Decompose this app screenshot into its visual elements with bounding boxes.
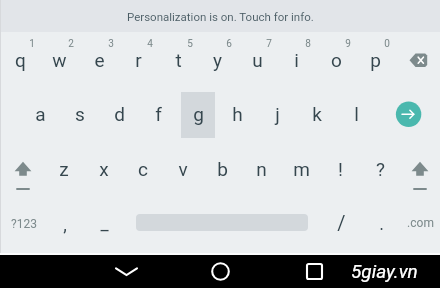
button[interactable]: e bbox=[80, 33, 119, 87]
button[interactable]: v bbox=[163, 142, 202, 196]
staticText: 4 bbox=[147, 38, 153, 50]
staticText: p bbox=[370, 49, 381, 71]
button[interactable]: ?123 bbox=[1, 200, 47, 248]
button[interactable]: f bbox=[139, 87, 178, 141]
button[interactable]: a bbox=[21, 87, 60, 141]
staticText: q bbox=[15, 49, 26, 71]
staticText: r bbox=[135, 49, 142, 71]
button[interactable]: Recent apps bbox=[294, 255, 335, 288]
button[interactable]: ? bbox=[361, 142, 400, 196]
staticText: c bbox=[138, 158, 148, 180]
button[interactable]: s bbox=[60, 87, 99, 141]
button[interactable]: y bbox=[198, 33, 237, 87]
staticText: _ bbox=[100, 213, 109, 234]
staticText: n bbox=[256, 158, 267, 180]
staticText: g bbox=[193, 103, 204, 125]
button[interactable]: g bbox=[179, 87, 218, 141]
staticText: a bbox=[35, 103, 46, 125]
staticText: 3 bbox=[108, 38, 114, 50]
staticText: 5giay.vn bbox=[351, 260, 418, 282]
staticText: x bbox=[99, 158, 109, 180]
staticText: 8 bbox=[305, 38, 311, 50]
button[interactable]: q bbox=[1, 33, 40, 87]
staticText: z bbox=[59, 158, 69, 180]
button[interactable]: m bbox=[282, 142, 321, 196]
staticText: k bbox=[312, 103, 322, 125]
button[interactable]: _ bbox=[85, 199, 124, 247]
button[interactable]: w bbox=[40, 33, 79, 87]
staticText: i bbox=[294, 49, 299, 71]
staticText: Personalization is on. Touch for info. bbox=[127, 10, 314, 23]
staticText: 2 bbox=[68, 38, 74, 50]
staticText: . bbox=[379, 213, 384, 234]
staticText: e bbox=[94, 49, 105, 71]
button[interactable]: Home bbox=[200, 255, 241, 288]
button[interactable]: u bbox=[238, 33, 277, 87]
button[interactable]: Shift bbox=[398, 141, 440, 195]
staticText: t bbox=[175, 49, 182, 71]
staticText: 9 bbox=[345, 38, 351, 50]
staticText: 0 bbox=[384, 38, 390, 50]
staticText: ?123 bbox=[11, 217, 37, 231]
button[interactable]: c bbox=[123, 142, 162, 196]
staticText: y bbox=[213, 49, 222, 71]
staticText: h bbox=[232, 103, 243, 125]
staticText: u bbox=[252, 49, 263, 71]
button[interactable]: Enter bbox=[385, 91, 432, 137]
staticText: 5 bbox=[187, 38, 193, 50]
button[interactable]: r bbox=[119, 33, 158, 87]
button[interactable]: z bbox=[44, 142, 83, 196]
button[interactable]: Shift bbox=[1, 141, 45, 195]
button[interactable]: ! bbox=[321, 142, 360, 196]
button[interactable]: , bbox=[45, 200, 84, 248]
staticText: 7 bbox=[266, 38, 272, 50]
staticText: d bbox=[114, 103, 125, 125]
staticText: ? bbox=[376, 158, 385, 180]
staticText: f bbox=[155, 103, 162, 125]
staticText: l bbox=[354, 103, 359, 125]
button[interactable]: o bbox=[317, 33, 356, 87]
button[interactable]: / bbox=[322, 198, 361, 246]
button[interactable]: Hide keyboard bbox=[106, 255, 147, 288]
button[interactable]: .com bbox=[398, 199, 440, 247]
staticText: j bbox=[275, 103, 280, 125]
staticText: w bbox=[52, 49, 67, 71]
button[interactable]: x bbox=[84, 142, 123, 196]
button[interactable]: d bbox=[100, 87, 139, 141]
staticText: .com bbox=[407, 216, 434, 230]
staticText: 6 bbox=[226, 38, 232, 50]
staticText: , bbox=[63, 214, 67, 235]
staticText: s bbox=[75, 103, 85, 125]
staticText: ! bbox=[338, 158, 343, 180]
button[interactable]: k bbox=[297, 87, 336, 141]
staticText: 1 bbox=[29, 38, 35, 50]
button[interactable]: . bbox=[362, 199, 401, 247]
button[interactable]: Backspace bbox=[396, 32, 440, 86]
button[interactable]: t bbox=[159, 33, 198, 87]
staticText: b bbox=[217, 158, 228, 180]
button[interactable]: Personalization is on. Touch for info. bbox=[0, 0, 440, 32]
button[interactable]: j bbox=[258, 87, 297, 141]
staticText: o bbox=[331, 49, 342, 71]
staticText: / bbox=[337, 211, 346, 234]
staticText: m bbox=[293, 158, 310, 180]
button[interactable]: p bbox=[356, 33, 395, 87]
staticText: v bbox=[178, 158, 188, 180]
button[interactable]: i bbox=[277, 33, 316, 87]
button[interactable]: n bbox=[242, 142, 281, 196]
button[interactable]: l bbox=[337, 87, 376, 141]
button[interactable]: h bbox=[218, 87, 257, 141]
button[interactable]: b bbox=[203, 142, 242, 196]
